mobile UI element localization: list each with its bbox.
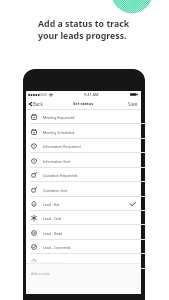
button[interactable]: Lead - Converted <box>26 240 141 254</box>
button[interactable]: Save <box>126 100 141 108</box>
button[interactable]: Lead - Lost <box>26 255 141 269</box>
staticText: Lead - Dead <box>43 231 63 236</box>
staticText: Information Sent <box>43 159 71 164</box>
button[interactable]: Add a note <box>26 263 141 294</box>
button[interactable]: Lead - Dead <box>26 226 141 240</box>
button[interactable]: Lead - Cold <box>26 211 141 225</box>
staticText: Quotation Requested <box>43 173 78 178</box>
staticText: your leads progress. <box>38 30 127 42</box>
button[interactable]: Quotation Sent <box>26 183 141 197</box>
staticText: Meeting Scheduled <box>43 130 75 135</box>
staticText: 1020 <box>39 92 48 97</box>
staticText: Information Requested <box>43 144 81 149</box>
button[interactable]: Information Sent <box>26 154 141 168</box>
staticText: Lead - Converted <box>43 245 71 250</box>
staticText: Add a status to track <box>38 18 130 30</box>
staticText: 9:41 AM <box>84 92 99 97</box>
button[interactable]: Information Requested <box>26 139 141 153</box>
button[interactable]: Quotation Requested <box>26 168 141 182</box>
staticText: Lead - Cold <box>43 216 61 221</box>
button[interactable]: Back <box>28 100 44 108</box>
button[interactable]: Meeting Scheduled <box>26 125 141 139</box>
staticText: Quotation Sent <box>43 188 68 193</box>
staticText: Lead - Hot <box>43 202 60 207</box>
staticText: Add a note <box>31 271 50 276</box>
button[interactable]: Lead - Hot <box>26 197 141 211</box>
staticText: Lead - Lost <box>43 260 61 265</box>
staticText: Set status <box>73 101 94 107</box>
button[interactable]: Meeting Requested <box>26 110 141 124</box>
staticText: Back <box>33 101 43 107</box>
staticText: Meeting Requested <box>43 115 75 120</box>
